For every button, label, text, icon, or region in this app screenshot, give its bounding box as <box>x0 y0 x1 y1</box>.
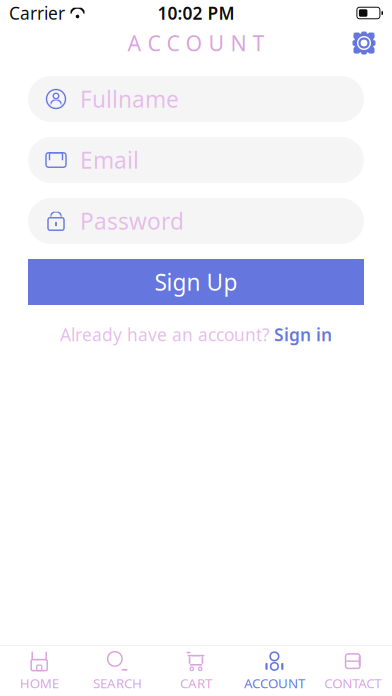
staticText: Sign Up <box>154 267 237 297</box>
staticText: Fullname <box>80 84 179 114</box>
button[interactable]: Sign Up <box>28 259 364 305</box>
staticText: CONTACT <box>324 674 381 692</box>
button[interactable]: Settings <box>342 23 386 63</box>
button[interactable]: SEARCH <box>78 644 157 696</box>
staticText: Sign in <box>274 323 332 346</box>
staticText: 10:02 PM <box>157 1 234 24</box>
staticText: Email <box>80 145 139 175</box>
staticText: SEARCH <box>93 674 142 692</box>
button[interactable]: Password <box>28 198 364 244</box>
button[interactable]: Email <box>28 137 364 183</box>
staticText: A C C O U N T <box>127 29 264 57</box>
button[interactable]: CONTACT <box>314 644 392 696</box>
staticText: Password <box>80 206 184 236</box>
staticText: CART <box>180 674 212 692</box>
staticText: HOME <box>20 674 59 692</box>
staticText: Already have an account? <box>60 323 270 346</box>
button[interactable]: CART <box>157 644 235 696</box>
button[interactable]: ACCOUNT <box>235 644 314 696</box>
staticText: ACCOUNT <box>244 674 305 692</box>
button[interactable]: Already have an account? <box>28 320 364 349</box>
button[interactable]: HOME <box>0 644 78 696</box>
button[interactable]: Fullname <box>28 76 364 122</box>
staticText: Carrier <box>9 1 65 24</box>
